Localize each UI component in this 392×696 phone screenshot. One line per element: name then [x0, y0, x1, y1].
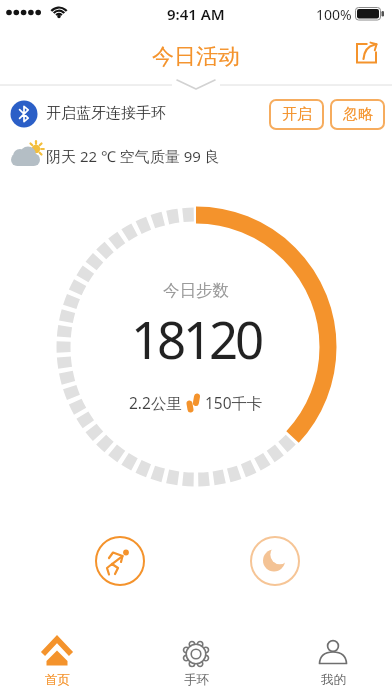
- staticText: 150千卡: [205, 392, 263, 413]
- button[interactable]: [250, 536, 300, 586]
- staticText: 100%: [316, 5, 352, 24]
- staticText: 首页: [45, 672, 70, 688]
- button[interactable]: 开启蓝牙连接手环: [46, 104, 166, 123]
- button[interactable]: 开启: [269, 99, 324, 130]
- staticText: 18120: [131, 304, 261, 373]
- staticText: 手环: [184, 672, 209, 688]
- button[interactable]: [348, 38, 382, 72]
- staticText: 9:41 AM: [167, 4, 225, 24]
- staticText: 忽略: [343, 105, 373, 124]
- button[interactable]: 首页: [12, 629, 102, 693]
- button[interactable]: [95, 536, 145, 586]
- staticText: 开启蓝牙连接手环: [46, 104, 166, 123]
- button[interactable]: 忽略: [330, 99, 385, 130]
- staticText: 今日活动: [152, 43, 240, 71]
- staticText: 今日步数: [163, 280, 229, 301]
- button[interactable]: 我的: [288, 629, 378, 693]
- staticText: 开启: [282, 105, 312, 124]
- staticText: 我的: [321, 672, 346, 688]
- button[interactable]: 手环: [151, 629, 241, 693]
- staticText: 阴天 22 ℃ 空气质量 99 良: [46, 146, 220, 166]
- staticText: 2.2公里: [129, 392, 182, 413]
